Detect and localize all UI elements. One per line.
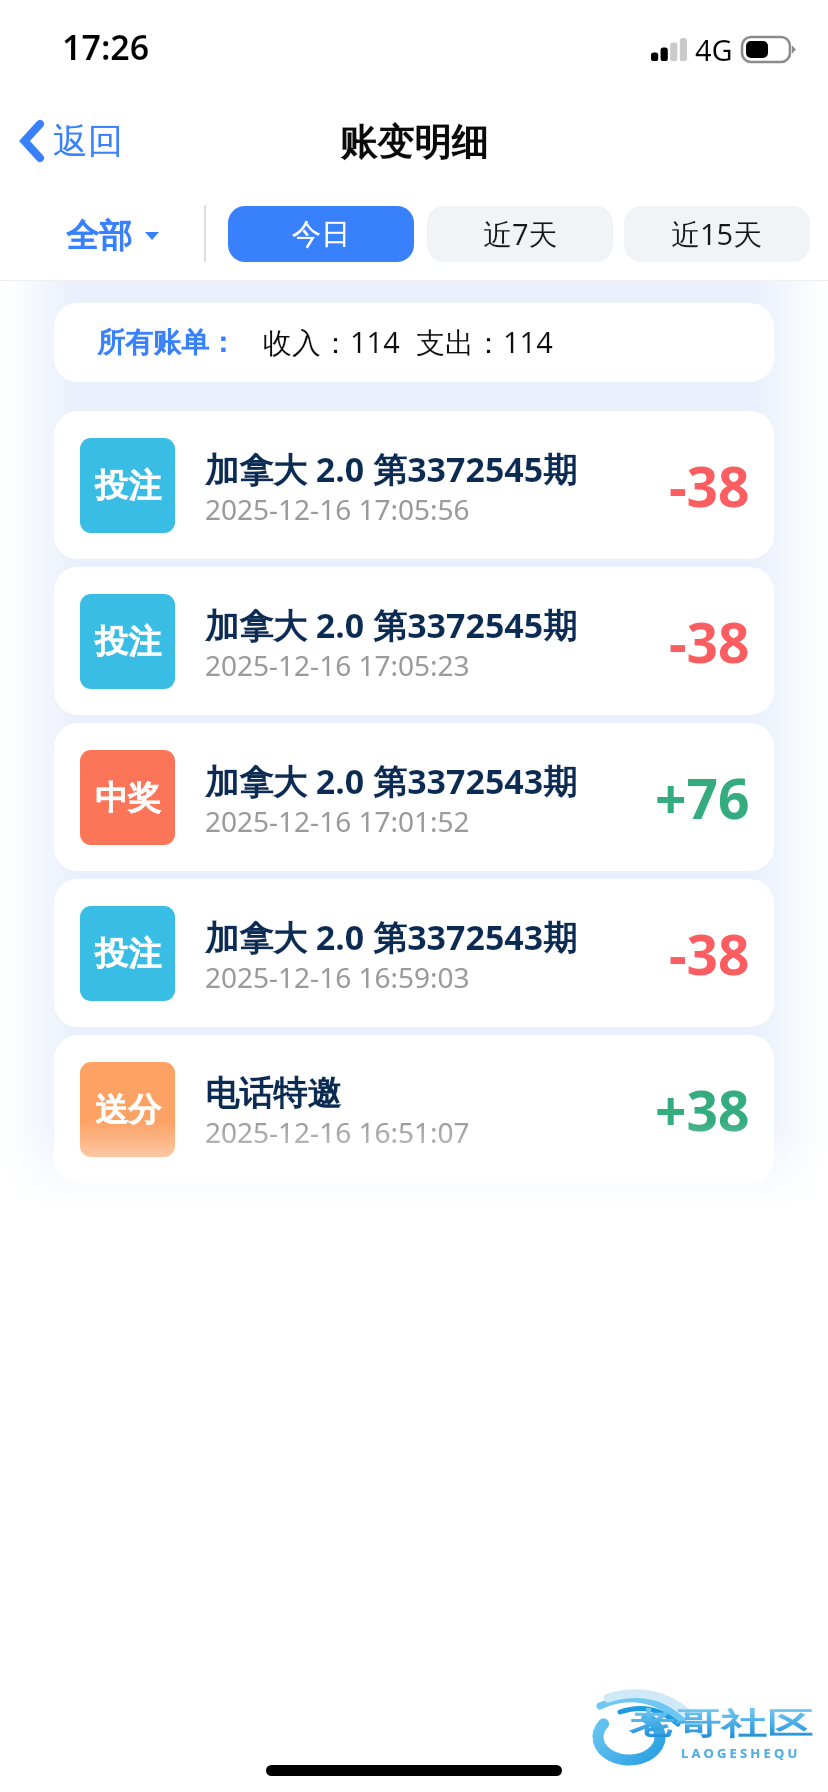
staticText: 加拿大 2.0 第3372545期 (205, 446, 578, 492)
staticText: 2025-12-16 16:51:07 (205, 1113, 470, 1151)
staticText: 2025-12-16 17:01:52 (205, 802, 470, 840)
button[interactable]: 返回 (0, 111, 139, 171)
staticText: -38 (669, 448, 750, 523)
staticText: 支出：114 (416, 322, 553, 362)
staticText: 加拿大 2.0 第3372543期 (205, 914, 578, 960)
staticText: 收入：114 (263, 322, 400, 362)
staticText: 投注 (95, 621, 161, 663)
staticText: 今日 (292, 216, 350, 253)
button[interactable]: 中奖 (54, 723, 774, 871)
staticText: 2025-12-16 17:05:56 (205, 490, 470, 528)
staticText: 2025-12-16 17:05:23 (205, 646, 470, 684)
staticText: 送分 (95, 1089, 161, 1131)
staticText: 近15天 (671, 214, 763, 254)
staticText: +38 (655, 1072, 750, 1147)
button[interactable]: 投注 (54, 411, 774, 559)
staticText: 投注 (95, 465, 161, 507)
staticText: LAOGESHEQU (681, 1744, 801, 1762)
staticText: 中奖 (95, 777, 161, 819)
staticText: 加拿大 2.0 第3372543期 (205, 758, 578, 804)
staticText: 老哥社区 (629, 1705, 813, 1743)
staticText: 加拿大 2.0 第3372545期 (205, 602, 578, 648)
button[interactable]: 投注 (54, 567, 774, 715)
staticText: 近7天 (483, 214, 558, 254)
staticText: 4G (695, 30, 733, 69)
button[interactable]: 近15天 (624, 206, 810, 262)
staticText: +76 (655, 760, 750, 835)
button[interactable]: 投注 (54, 879, 774, 1027)
button[interactable]: 所有账单： (54, 303, 774, 382)
staticText: -38 (669, 604, 750, 679)
staticText: 2025-12-16 16:59:03 (205, 958, 470, 996)
staticText: 电话特邀 (205, 1072, 341, 1115)
staticText: 账变明细 (340, 119, 488, 166)
button[interactable]: 今日 (228, 206, 414, 262)
staticText: 17:26 (62, 24, 150, 70)
staticText: 返回 (53, 119, 123, 163)
staticText: -38 (669, 916, 750, 991)
button[interactable]: 送分 (54, 1035, 774, 1183)
button[interactable]: 近7天 (427, 206, 613, 262)
button[interactable]: 全部 (50, 203, 175, 269)
staticText: 全部 (66, 215, 132, 257)
staticText: 所有账单： (97, 325, 237, 360)
staticText: 投注 (95, 933, 161, 975)
